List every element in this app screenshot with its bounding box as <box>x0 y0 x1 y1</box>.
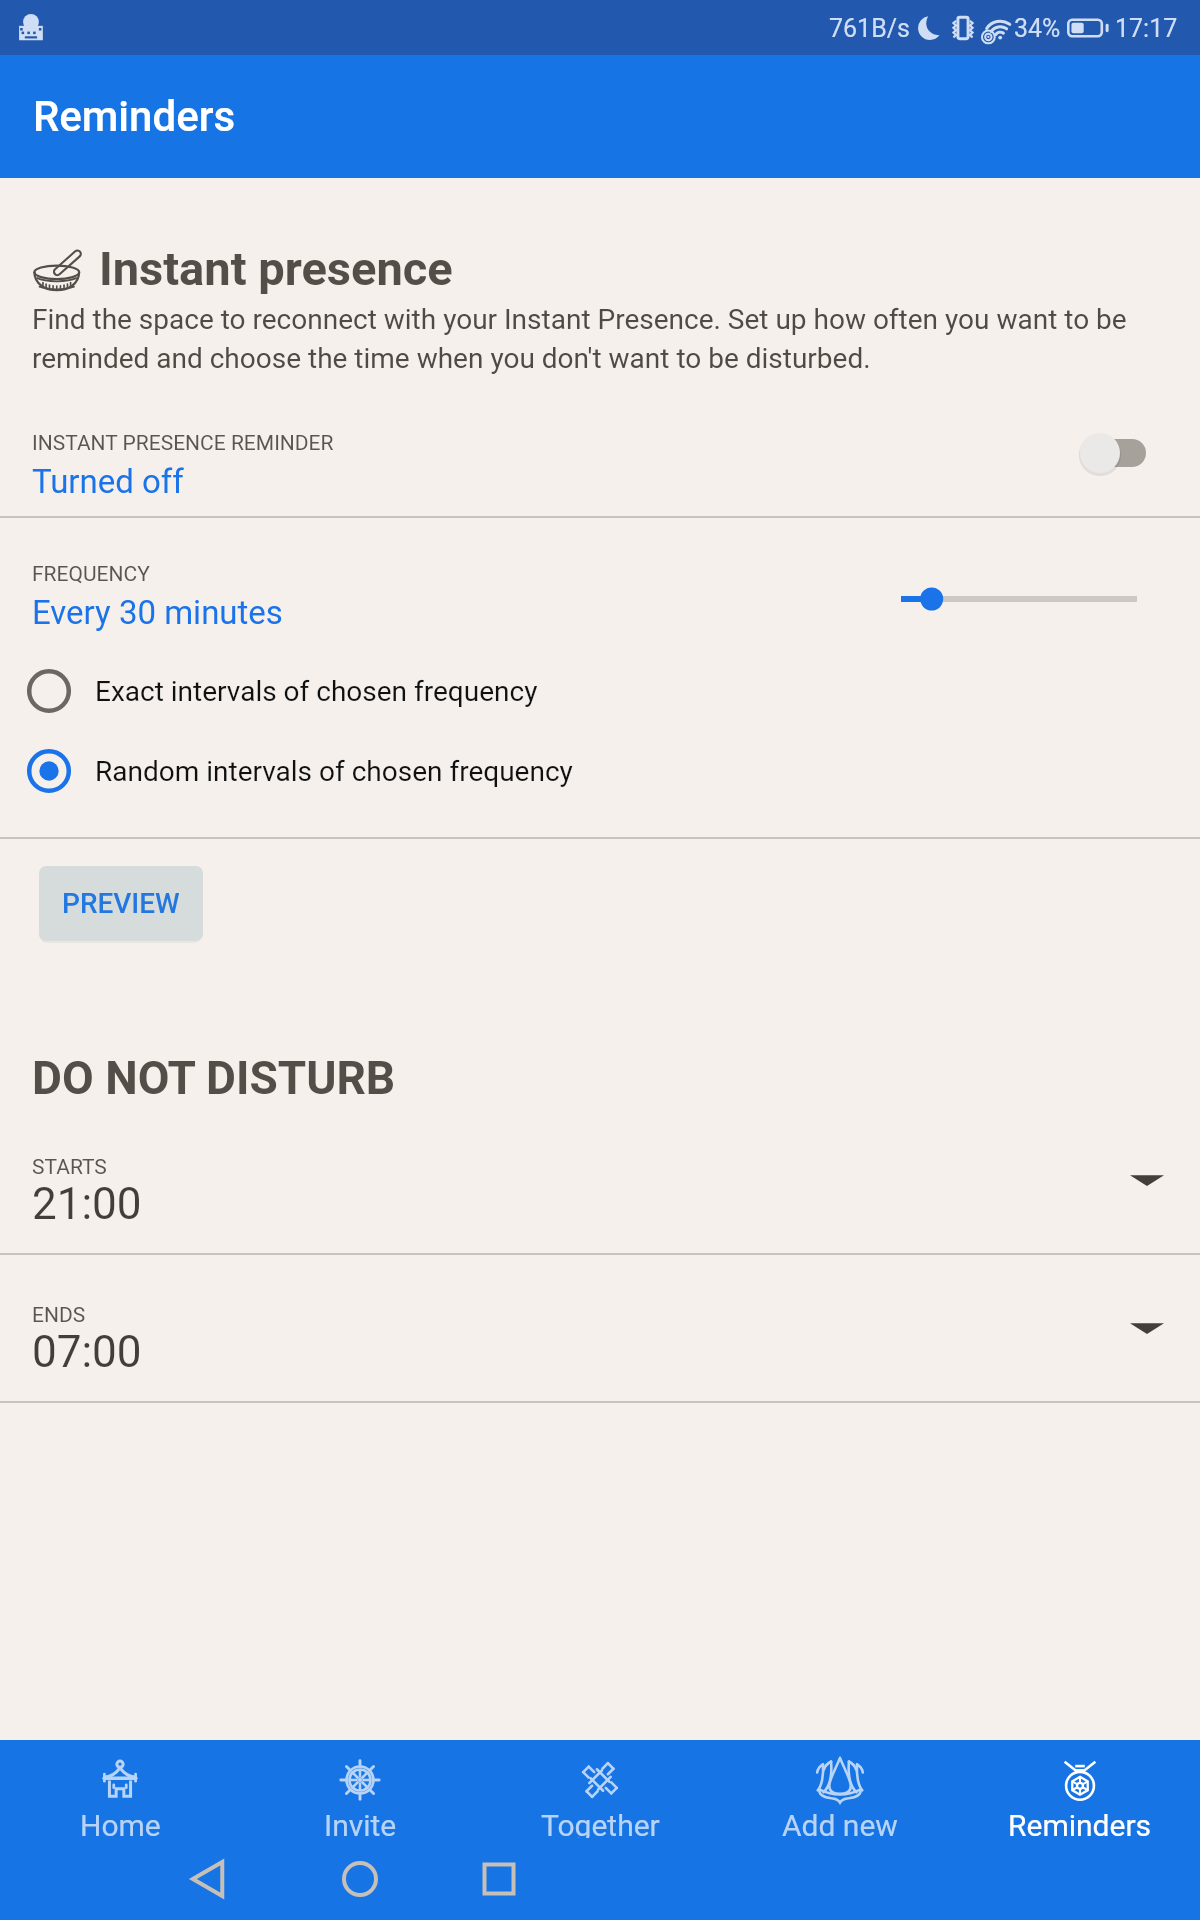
button[interactable]: STARTS <box>0 1107 1200 1253</box>
button[interactable]: ENDS <box>0 1255 1200 1401</box>
button[interactable]: PREVIEW <box>39 866 203 941</box>
button[interactable]: Recents <box>474 1854 524 1904</box>
staticText: FREQUENCY <box>32 562 150 587</box>
staticText: 21:00 <box>32 1178 142 1230</box>
staticText: Random intervals of chosen frequency <box>95 755 573 788</box>
staticText: 761B/s <box>829 14 910 43</box>
staticText: ENDS <box>32 1303 86 1328</box>
staticText: PREVIEW <box>62 887 180 920</box>
staticText: Exact intervals of chosen frequency <box>95 675 538 708</box>
button[interactable]: Instant presence reminder toggle <box>1080 426 1150 480</box>
button[interactable]: INSTANT PRESENCE REMINDER <box>0 415 1200 516</box>
staticText: Home <box>80 1808 161 1843</box>
staticText: DO NOT DISTURB <box>32 1051 396 1105</box>
staticText: Add new <box>782 1808 898 1843</box>
staticText: 17:17 <box>1115 14 1178 43</box>
staticText: Turned off <box>32 462 184 501</box>
button[interactable]: Back <box>184 1854 234 1904</box>
staticText: STARTS <box>32 1155 107 1180</box>
staticText: Find the space to reconnect with your In… <box>32 303 1192 375</box>
button[interactable]: Add new <box>720 1740 960 1838</box>
staticText: Reminders <box>33 92 236 141</box>
staticText: Invite <box>324 1808 397 1843</box>
button[interactable]: Exact intervals of chosen frequency <box>0 651 1200 731</box>
button[interactable]: Home <box>0 1740 240 1838</box>
button[interactable]: Together <box>480 1740 720 1838</box>
button[interactable]: Reminders <box>960 1740 1200 1838</box>
staticText: Every 30 minutes <box>32 593 283 632</box>
button[interactable]: Frequency slider <box>901 570 1137 628</box>
button[interactable]: Random intervals of chosen frequency <box>0 731 1200 811</box>
staticText: 34% <box>1014 14 1061 43</box>
staticText: Instant presence <box>99 241 453 296</box>
staticText: Reminders <box>1008 1808 1152 1843</box>
staticText: INSTANT PRESENCE REMINDER <box>32 431 334 456</box>
button[interactable]: Home <box>335 1854 385 1904</box>
staticText: 07:00 <box>32 1326 142 1378</box>
button[interactable]: Keyboard <box>18 10 54 46</box>
staticText: Together <box>541 1808 660 1843</box>
button[interactable]: Invite <box>240 1740 480 1838</box>
